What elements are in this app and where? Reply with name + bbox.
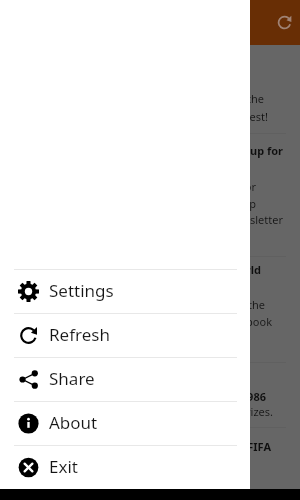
staticText: Winners and prizes. bbox=[0, 404, 273, 419]
staticText: with our daily newsletter bbox=[0, 212, 283, 227]
button[interactable]: Exit bbox=[0, 445, 250, 489]
staticText: Share bbox=[49, 367, 95, 390]
button[interactable]: Settings bbox=[0, 269, 250, 313]
staticText: news fast as the best! bbox=[0, 109, 268, 124]
staticText: Everything you need is the bbox=[0, 297, 265, 312]
staticText: About bbox=[49, 411, 98, 434]
staticText: Big news of the world bbox=[0, 262, 261, 277]
staticText: Subscribe / Sign up for bbox=[0, 143, 283, 158]
staticText: Exit bbox=[49, 455, 78, 478]
staticText: latest from our book bbox=[0, 314, 272, 329]
staticText: Stay tuned and get the bbox=[0, 91, 264, 106]
button[interactable]: About bbox=[0, 401, 250, 445]
staticText: Sport events of 1986 bbox=[0, 389, 266, 404]
staticText: Refresh bbox=[49, 323, 110, 346]
staticText: Settings bbox=[49, 279, 114, 302]
staticText: Follow our updates for bbox=[0, 179, 256, 194]
button[interactable]: Share bbox=[0, 357, 250, 401]
button[interactable]: Refresh bbox=[0, 313, 250, 357]
button[interactable]: Refresh bbox=[268, 6, 300, 39]
staticText: World champions FIFA bbox=[0, 439, 271, 454]
staticText: free and also keep up bbox=[0, 196, 256, 211]
